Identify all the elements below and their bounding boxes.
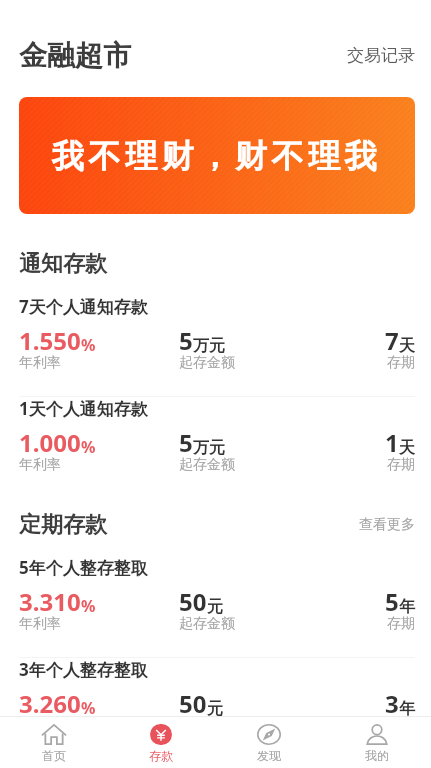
button[interactable]: 交易记录 [331, 23, 431, 74]
staticText: 起存金额 [179, 615, 235, 633]
staticText: 年利率 [19, 456, 61, 474]
staticText: 存期 [387, 354, 415, 372]
button[interactable]: 1天个人通知存款 [0, 397, 431, 498]
staticText: % [81, 595, 96, 617]
staticText: 5 [385, 585, 399, 618]
staticText: 交易记录 [347, 45, 415, 66]
staticText: 元 [207, 699, 223, 719]
staticText: % [81, 697, 96, 719]
staticText: 3.260 [19, 687, 81, 720]
staticText: 5 [179, 426, 193, 459]
staticText: 天 [399, 438, 415, 458]
staticText: 我不理财，财不理我 [52, 136, 382, 176]
staticText: 起存金额 [179, 354, 235, 372]
staticText: 元 [207, 597, 223, 617]
staticText: 存款 [149, 748, 173, 763]
staticText: 50 [179, 585, 207, 618]
button[interactable]: 我的 [323, 717, 431, 768]
staticText: 起存金额 [179, 456, 235, 474]
staticText: 发现 [257, 748, 281, 763]
staticText: 7 [385, 324, 399, 357]
other: 发现 [257, 724, 281, 745]
button[interactable]: 发现 [215, 717, 323, 768]
button[interactable]: 3年个人整存整取 [0, 658, 431, 759]
button[interactable]: 5年个人整存整取 [0, 556, 431, 657]
staticText: 通知存款 [19, 250, 107, 278]
other: 存款 [149, 724, 173, 745]
staticText: 年利率 [19, 717, 61, 735]
staticText: 3 [385, 687, 399, 720]
staticText: 金融超市 [19, 38, 131, 73]
staticText: % [81, 436, 96, 458]
staticText: 1天个人通知存款 [19, 397, 148, 420]
staticText: 1 [385, 426, 399, 459]
staticText: 定期存款 [19, 511, 107, 539]
button[interactable]: 7天个人通知存款 [0, 295, 431, 396]
staticText: 年 [399, 699, 415, 719]
staticText: 年 [399, 597, 415, 617]
staticText: 7天个人通知存款 [19, 295, 148, 318]
staticText: 年利率 [19, 354, 61, 372]
staticText: 首页 [42, 748, 66, 763]
staticText: 查看更多 [359, 516, 415, 534]
staticText: 3年个人整存整取 [19, 658, 148, 681]
other: 首页 [42, 724, 66, 745]
staticText: 1.000 [19, 426, 81, 459]
staticText: 存期 [387, 456, 415, 474]
staticText: % [81, 334, 96, 356]
button[interactable]: 查看更多 [359, 516, 415, 534]
staticText: 天 [399, 336, 415, 356]
staticText: 5 [179, 324, 193, 357]
button[interactable]: 我不理财，财不理我 [19, 97, 415, 214]
button[interactable]: 存款 [107, 717, 215, 768]
staticText: 万元 [193, 336, 225, 356]
staticText: 万元 [193, 438, 225, 458]
other: 我的 [365, 724, 389, 745]
staticText: 1.550 [19, 324, 81, 357]
staticText: 50 [179, 687, 207, 720]
button[interactable]: 首页 [0, 717, 107, 768]
staticText: 3.310 [19, 585, 81, 618]
staticText: 存期 [387, 615, 415, 633]
staticText: 我的 [365, 748, 389, 763]
staticText: 年利率 [19, 615, 61, 633]
staticText: 5年个人整存整取 [19, 556, 148, 579]
